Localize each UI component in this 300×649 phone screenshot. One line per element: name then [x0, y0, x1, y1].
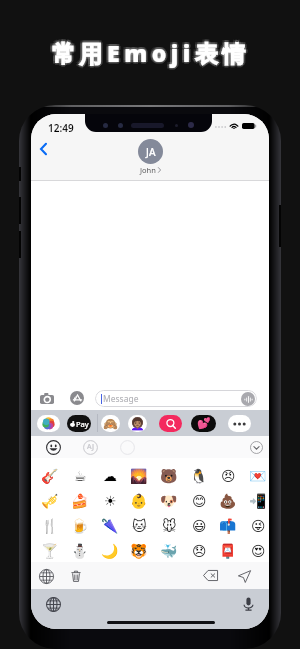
- staticText: 常用Emoji表情: [52, 37, 250, 68]
- button[interactable]: Message: [95, 390, 257, 407]
- button[interactable]: Record audio: [241, 392, 255, 406]
- staticText: 12:49: [48, 121, 74, 135]
- button[interactable]: 🐻: [158, 465, 180, 487]
- button[interactable]: Digital Touch: [191, 415, 216, 432]
- staticText: 常用Emoji表情: [50, 35, 248, 66]
- staticText: ☁️: [103, 468, 117, 484]
- button[interactable]: 💩: [217, 490, 239, 512]
- button[interactable]: Images: [159, 415, 182, 432]
- staticText: 🍴: [41, 518, 59, 534]
- button[interactable]: 🐭: [158, 515, 180, 537]
- button[interactable]: 🐶: [158, 490, 180, 512]
- staticText: 常用Emoji表情: [53, 35, 251, 66]
- staticText: 🐻: [160, 468, 178, 484]
- staticText: 🙈: [103, 417, 118, 431]
- button[interactable]: 😃: [188, 515, 210, 537]
- button[interactable]: 🍰: [69, 490, 91, 512]
- button[interactable]: 🍸: [39, 540, 61, 562]
- staticText: 👩🏽‍🦱: [130, 417, 145, 431]
- button[interactable]: 🐱: [128, 515, 150, 537]
- staticText: Message: [103, 393, 139, 405]
- button[interactable]: 😠: [217, 465, 239, 487]
- button[interactable]: 🍺: [69, 515, 91, 537]
- staticText: 常用Emoji表情: [53, 38, 251, 69]
- button[interactable]: Next keyboard: [36, 566, 56, 586]
- button[interactable]: Change keyboard: [43, 594, 63, 614]
- staticText: 😍: [251, 543, 266, 559]
- staticText: 🍺: [71, 518, 89, 534]
- staticText: 🌙: [101, 543, 119, 559]
- button[interactable]: Emoji category: [45, 439, 61, 455]
- button[interactable]: 🎸: [39, 465, 61, 487]
- button[interactable]: Camera: [36, 388, 57, 409]
- staticText: 📫: [219, 518, 237, 534]
- button[interactable]: 💌: [247, 465, 269, 487]
- staticText: 👶: [130, 493, 148, 509]
- button[interactable]: Sticker category: [119, 439, 135, 455]
- button[interactable]: ☀️: [99, 490, 121, 512]
- staticText: John: [140, 165, 156, 175]
- staticText: 常用Emoji表情: [54, 37, 252, 68]
- staticText: 🎺: [41, 493, 59, 509]
- staticText: 常用Emoji表情: [52, 35, 250, 66]
- button[interactable]: 🎺: [39, 490, 61, 512]
- staticText: 📮: [219, 543, 237, 559]
- button[interactable]: More apps: [228, 415, 251, 432]
- button[interactable]: 🐳: [158, 540, 180, 562]
- button[interactable]: Sticker category: [82, 439, 98, 455]
- staticText: 🐶: [160, 493, 178, 509]
- button[interactable]: Collapse keyboard: [249, 440, 263, 454]
- button[interactable]: Memoji girl: [128, 415, 147, 432]
- button[interactable]: 😊: [188, 490, 210, 512]
- staticText: 🐱: [132, 518, 147, 534]
- button[interactable]: 📫: [217, 515, 239, 537]
- button[interactable]: 😞: [188, 540, 210, 562]
- button[interactable]: ☕: [69, 465, 91, 487]
- button[interactable]: 🌂: [99, 515, 121, 537]
- button[interactable]: 👶: [128, 490, 150, 512]
- staticText: ⛄: [71, 543, 89, 559]
- button[interactable]: Back: [36, 142, 50, 156]
- button[interactable]: 🐧: [188, 465, 210, 487]
- staticText: 🐭: [162, 518, 177, 534]
- button[interactable]: 🌙: [99, 540, 121, 562]
- staticText: ☕: [74, 468, 87, 484]
- button[interactable]: Dictation: [238, 594, 258, 614]
- staticText: 常用Emoji表情: [52, 39, 250, 70]
- button[interactable]: 📲: [247, 490, 269, 512]
- button[interactable]: 😍: [247, 540, 269, 562]
- button[interactable]: 😜: [247, 515, 269, 537]
- button[interactable]: Send: [234, 566, 254, 586]
- staticText: 🍸: [41, 543, 59, 559]
- button[interactable]: App Store: [70, 391, 84, 405]
- staticText: 💕: [197, 417, 211, 430]
- staticText: 💌: [249, 468, 267, 484]
- button[interactable]: Apple Pay: [67, 415, 91, 432]
- staticText: AJ: [87, 442, 94, 452]
- button[interactable]: Backspace: [200, 565, 221, 586]
- button[interactable]: Delete recents: [66, 566, 86, 586]
- staticText: 🐯: [130, 543, 148, 559]
- staticText: 常用Emoji表情: [50, 37, 248, 68]
- button[interactable]: ⛄: [69, 540, 91, 562]
- staticText: 🐳: [160, 543, 178, 559]
- staticText: 😞: [192, 543, 207, 559]
- staticText: Pay: [76, 419, 89, 429]
- button[interactable]: 📮: [217, 540, 239, 562]
- staticText: 🌂: [101, 518, 119, 534]
- button[interactable]: 🍴: [39, 515, 61, 537]
- button[interactable]: 🐯: [128, 540, 150, 562]
- staticText: 常用Emoji表情: [50, 38, 248, 69]
- staticText: ☀️: [104, 493, 117, 509]
- button[interactable]: 🌄: [128, 465, 150, 487]
- staticText: 😊: [192, 493, 207, 509]
- button[interactable]: JA: [138, 139, 163, 175]
- staticText: 💩: [219, 493, 237, 509]
- button[interactable]: Photos: [37, 415, 60, 432]
- staticText: 🐧: [190, 468, 208, 484]
- staticText: 📲: [249, 493, 267, 509]
- staticText: 😜: [251, 518, 266, 534]
- staticText: 😃: [192, 518, 207, 534]
- button[interactable]: ☁️: [99, 465, 121, 487]
- button[interactable]: Memoji monkey: [101, 415, 120, 432]
